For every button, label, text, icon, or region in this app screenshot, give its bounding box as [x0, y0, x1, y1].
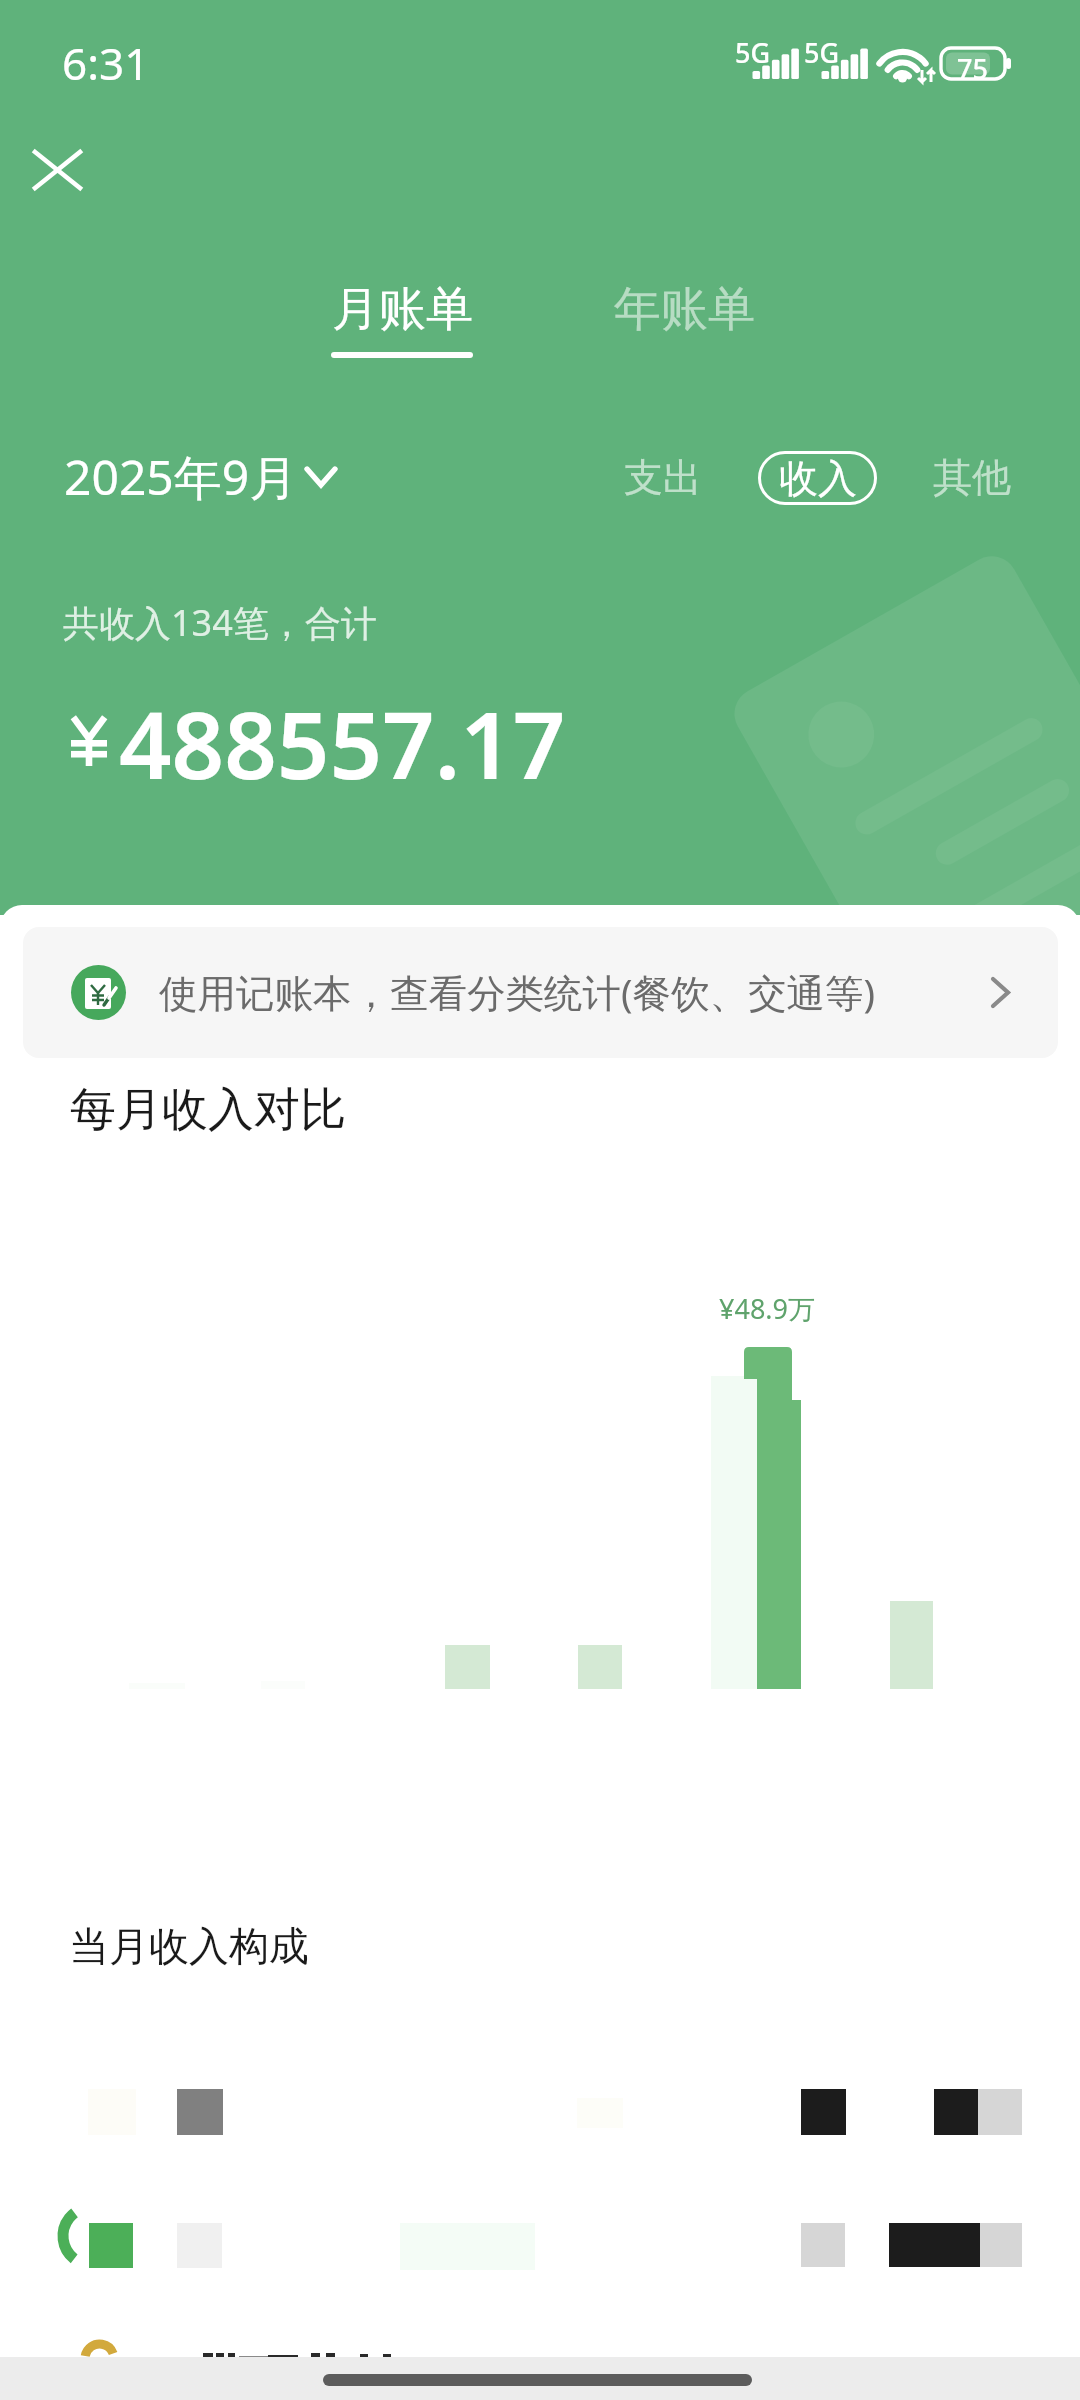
button[interactable]: 收入 [758, 451, 877, 505]
staticText: 488557.17 [119, 681, 566, 806]
staticText: 使用记账本，查看分类统计(餐饮、交通等) [159, 966, 876, 1019]
staticText: 月账单 [332, 280, 473, 339]
button[interactable]: 支出 [614, 445, 712, 510]
button[interactable]: 其他 [923, 445, 1021, 510]
button[interactable]: 月账单 [329, 280, 475, 358]
staticText: 年账单 [614, 280, 755, 339]
staticText: 每月收入对比 [70, 1081, 346, 1139]
staticText: 收入 [779, 454, 857, 503]
button[interactable]: 2025年9月 [58, 444, 344, 510]
staticText: 5G [735, 34, 771, 71]
staticText: 75 [957, 50, 988, 87]
staticText: 6:31 [62, 33, 150, 93]
button[interactable]: 年账单 [611, 280, 757, 358]
staticText: 2025年9月 [64, 444, 298, 510]
staticText: 5G [804, 34, 840, 71]
button[interactable]: 使用记账本，查看分类统计(餐饮、交通等) [23, 927, 1058, 1058]
staticText: ¥48.9万 [719, 1290, 816, 1327]
button[interactable]: Close [10, 123, 104, 217]
staticText: 当月收入构成 [69, 1921, 309, 1971]
staticText: 共收入134笔，合计 [63, 598, 377, 647]
